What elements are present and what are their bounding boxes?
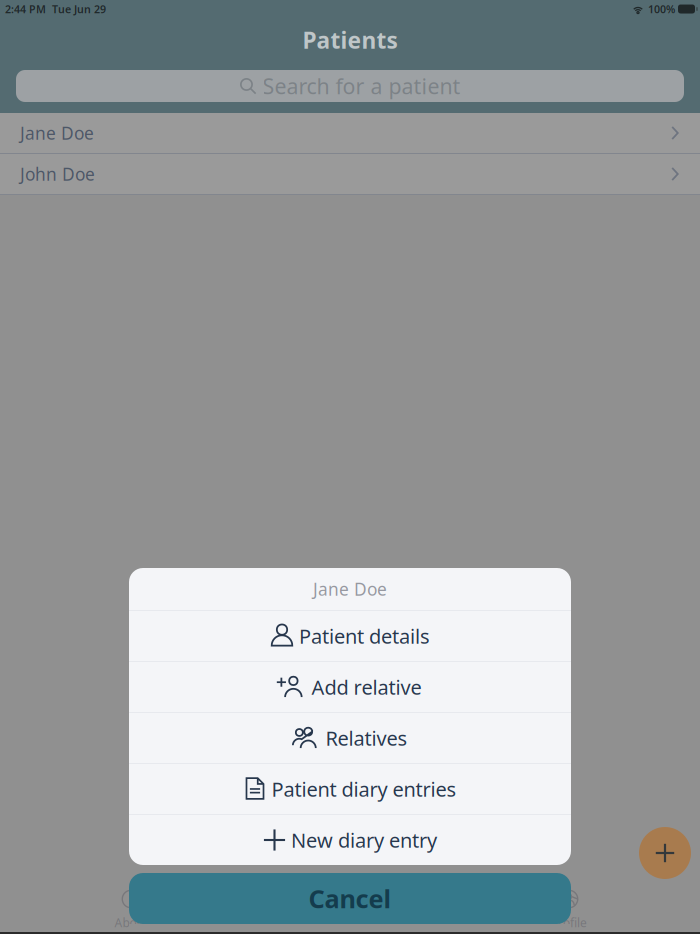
staticText: John Doe [20,162,95,185]
button[interactable]: Patient diary entries [129,764,571,814]
staticText: New diary entry [291,827,437,853]
staticText: 100% [648,2,675,16]
staticText: Jane Doe [313,577,387,600]
staticText: Relatives [325,725,407,751]
button[interactable]: Add patient [639,827,691,879]
staticText: Patient details [299,623,430,649]
button[interactable]: Add relative [129,662,571,712]
button[interactable]: Relatives [129,713,571,763]
staticText: Add relative [311,674,421,700]
staticText: Search for a patient [262,72,460,100]
staticText: Cancel [308,882,391,915]
staticText: Jane Doe [20,121,94,144]
staticText: Patients [302,25,397,55]
staticText: 2:44 PM [5,2,46,16]
button[interactable]: Jane Doe [0,113,700,153]
staticText: Tue Jun 29 [52,2,106,16]
button[interactable]: Patients [240,888,459,932]
button[interactable]: Cancel [129,873,571,924]
button[interactable]: Profile [459,888,678,932]
button[interactable]: About [21,888,240,932]
button[interactable]: John Doe [0,154,700,194]
button[interactable]: Patient details [129,611,571,661]
staticText: Patient diary entries [271,776,456,802]
staticText: About [114,914,147,930]
staticText: Patients [327,914,372,930]
button[interactable]: Search for a patient [0,70,700,102]
button[interactable]: New diary entry [129,815,571,865]
staticText: Profile [551,914,587,930]
